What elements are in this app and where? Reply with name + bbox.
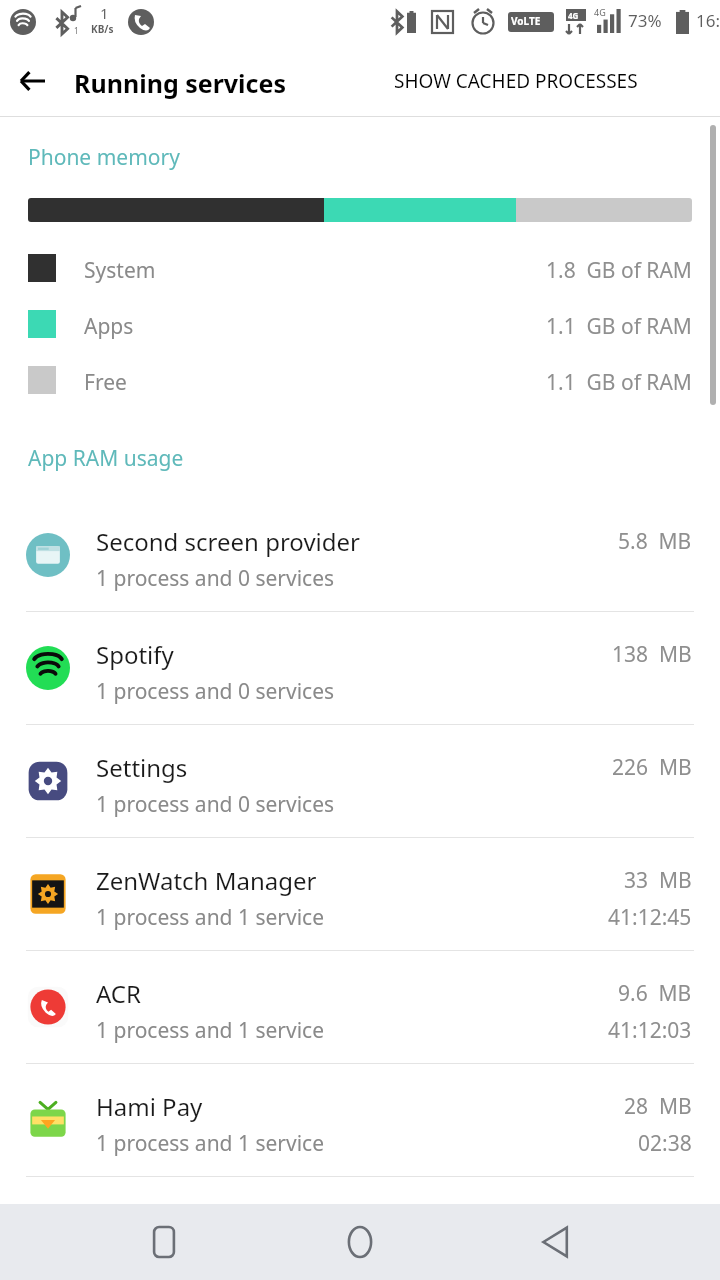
staticText: 226 MB [612, 753, 692, 782]
staticText: 5.8 MB [618, 527, 692, 556]
staticText: System [84, 256, 156, 285]
button[interactable]: Back [524, 1210, 588, 1274]
staticText: 73% [628, 9, 662, 32]
staticText: 1 process and 0 services [96, 790, 335, 819]
button[interactable]: Settings [0, 725, 720, 838]
staticText: 1 process and 1 service [96, 1016, 325, 1045]
button[interactable]: Back [8, 57, 56, 105]
staticText: 138 MB [612, 640, 692, 669]
button[interactable]: SHOW CACHED PROCESSES [394, 60, 638, 102]
button[interactable]: Recent apps [132, 1210, 196, 1274]
staticText: 1 process and 0 services [96, 677, 335, 706]
staticText: 1.8 GB of RAM [546, 256, 692, 285]
staticText: 41:12:45 [608, 903, 692, 932]
staticText: 28 MB [624, 1092, 692, 1121]
staticText: ZenWatch Manager [96, 864, 317, 897]
staticText: 02:38 [638, 1129, 692, 1158]
staticText: Running services [74, 66, 286, 100]
staticText: 4G [568, 10, 579, 21]
staticText: 1.1 GB of RAM [546, 312, 692, 341]
button[interactable]: Spotify [0, 612, 720, 725]
staticText: 9.6 MB [618, 979, 692, 1008]
button[interactable]: Hami Pay [0, 1064, 720, 1177]
button[interactable]: System [0, 240, 720, 296]
staticText: 1 process and 0 services [96, 564, 335, 593]
staticText: Spotify [96, 638, 174, 671]
staticText: 4G [594, 6, 606, 18]
staticText: 16:58 [696, 9, 720, 32]
button[interactable]: ACR [0, 951, 720, 1064]
staticText: Settings [96, 751, 188, 784]
staticText: Second screen provider [96, 525, 360, 558]
staticText: SHOW CACHED PROCESSES [394, 68, 638, 94]
staticText: 1 [100, 3, 109, 23]
staticText: 1 process and 1 service [96, 1129, 325, 1158]
staticText: App RAM usage [28, 444, 184, 473]
staticText: VoLTE [511, 14, 541, 28]
button[interactable]: Free [0, 352, 720, 408]
staticText: 1.1 GB of RAM [546, 368, 692, 397]
staticText: KB/s [91, 22, 114, 36]
staticText: Apps [84, 312, 134, 341]
staticText: 1 [74, 25, 79, 36]
staticText: Free [84, 368, 127, 397]
button[interactable]: Second screen provider [0, 499, 720, 612]
button[interactable]: ZenWatch Manager [0, 838, 720, 951]
staticText: 1 process and 1 service [96, 903, 325, 932]
staticText: ACR [96, 977, 141, 1010]
staticText: Phone memory [28, 143, 180, 172]
staticText: Hami Pay [96, 1090, 203, 1123]
staticText: 41:12:03 [608, 1016, 692, 1045]
button[interactable]: Home [328, 1210, 392, 1274]
staticText: 33 MB [624, 866, 692, 895]
button[interactable]: Apps [0, 296, 720, 352]
